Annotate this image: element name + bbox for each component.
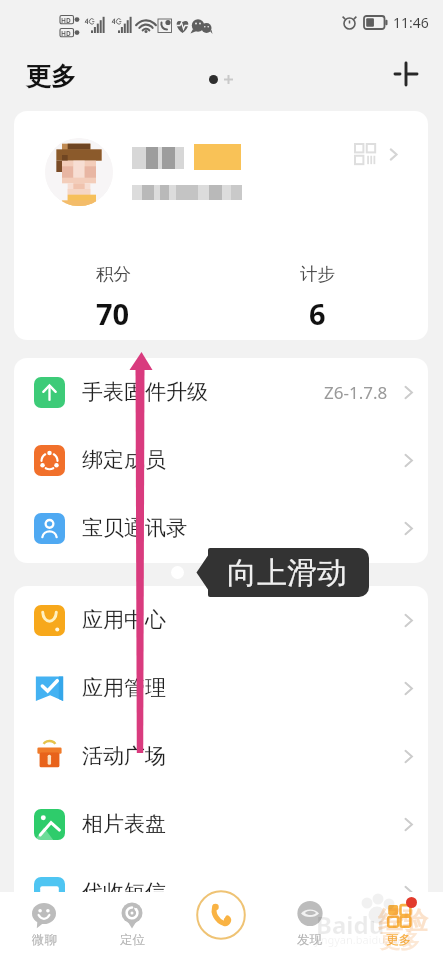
button[interactable]: 相片表盘 bbox=[14, 790, 428, 858]
staticText: HD bbox=[61, 29, 71, 38]
button[interactable]: Call bbox=[196, 890, 246, 940]
staticText: 应用管理 bbox=[82, 675, 166, 701]
button[interactable]: 计步 bbox=[289, 263, 345, 333]
staticText: 绑定成员 bbox=[82, 447, 166, 473]
staticText: 11:46 bbox=[393, 13, 429, 32]
staticText: 更多 bbox=[386, 932, 411, 948]
staticText: Baidu bbox=[316, 908, 385, 941]
staticText: jingyan.baidu.com bbox=[315, 932, 411, 947]
staticText: 手表固件升级 bbox=[82, 379, 208, 405]
staticText: 经验 bbox=[378, 905, 428, 936]
staticText: Z6-1.7.8 bbox=[324, 381, 388, 404]
button[interactable]: 积分 bbox=[85, 263, 141, 333]
staticText: 宝贝通讯录 bbox=[82, 515, 187, 541]
button[interactable]: 活动广场 bbox=[14, 722, 428, 790]
button[interactable]: 绑定成员 bbox=[14, 426, 428, 494]
staticText: 更多 bbox=[380, 929, 420, 954]
staticText: 活动广场 bbox=[82, 743, 166, 769]
staticText: 定位 bbox=[120, 932, 145, 948]
staticText: 向上滑动 bbox=[227, 554, 347, 592]
button[interactable]: QR code bbox=[355, 144, 376, 165]
staticText: 计步 bbox=[300, 263, 335, 285]
staticText: 相片表盘 bbox=[82, 811, 166, 837]
button[interactable]: 应用中心 bbox=[14, 586, 428, 654]
staticText: 发现 bbox=[297, 932, 322, 948]
staticText: 积分 bbox=[96, 263, 131, 285]
button[interactable]: 应用管理 bbox=[14, 654, 428, 722]
button[interactable]: 发现 bbox=[265, 892, 354, 960]
staticText: 微聊 bbox=[32, 932, 57, 948]
staticText: 更多 bbox=[26, 61, 76, 92]
button[interactable]: 宝贝通讯录 bbox=[14, 494, 428, 562]
button[interactable]: 手表固件升级 bbox=[14, 358, 428, 426]
button[interactable]: Add bbox=[390, 58, 422, 90]
staticText: 代收短信 bbox=[82, 879, 166, 905]
button[interactable]: QR code bbox=[14, 111, 428, 340]
staticText: 应用中心 bbox=[82, 607, 166, 633]
button[interactable]: 更多 bbox=[354, 892, 443, 960]
button[interactable]: 代收短信 bbox=[14, 858, 428, 926]
staticText: 6 bbox=[309, 294, 326, 333]
button[interactable]: 微聊 bbox=[0, 892, 88, 960]
button[interactable]: 定位 bbox=[88, 892, 176, 960]
staticText: HD bbox=[61, 16, 71, 25]
staticText: 70 bbox=[96, 294, 130, 333]
